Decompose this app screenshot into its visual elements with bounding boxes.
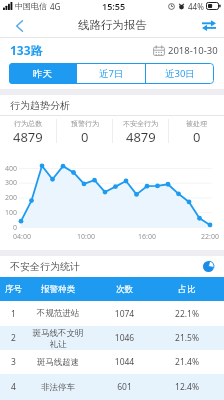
button[interactable]: 近30日 <box>146 63 214 84</box>
button[interactable]: Back <box>0 14 38 38</box>
staticText: 21.4% <box>160 356 214 368</box>
staticText: 次数 <box>89 284 160 295</box>
staticText: 非法停车 <box>27 382 89 393</box>
staticText: 线路行为报告 <box>78 18 147 32</box>
button[interactable]: Pie chart <box>203 261 214 272</box>
staticText: 昨天 <box>33 68 52 80</box>
staticText: 200 <box>0 193 17 203</box>
staticText: 1046 <box>89 332 160 344</box>
button[interactable]: Switch line <box>194 14 224 38</box>
staticText: 斑马线超速 <box>27 357 89 368</box>
staticText: 15:55 <box>102 0 126 12</box>
staticText: 1074 <box>89 308 160 320</box>
staticText: 0 <box>193 128 201 146</box>
staticText: 300 <box>0 178 17 188</box>
staticText: 近30日 <box>165 67 195 80</box>
staticText: 4 <box>0 381 27 393</box>
staticText: 100 <box>0 208 17 218</box>
staticText: 不安全行为统计 <box>10 260 80 273</box>
staticText: 序号 <box>0 284 27 295</box>
staticText: 44% <box>188 1 204 12</box>
staticText: 占比 <box>160 284 214 295</box>
staticText: 2 <box>0 332 27 344</box>
staticText: 4879 <box>126 128 156 146</box>
staticText: 22.1% <box>160 308 214 320</box>
staticText: 行为总数 <box>14 119 42 128</box>
staticText: 1 <box>0 308 27 320</box>
staticText: 不规范进站 <box>27 308 89 319</box>
staticText: 近7日 <box>99 67 124 80</box>
staticText: 斑马线不文明 礼让 <box>27 328 89 349</box>
staticText: 22:00 <box>197 232 223 242</box>
staticText: 不安全行为 <box>123 119 158 128</box>
staticText: 04:00 <box>9 232 35 242</box>
staticText: 4G <box>50 1 61 12</box>
staticText: 4879 <box>13 128 43 146</box>
staticText: 0 <box>0 223 17 233</box>
button[interactable]: 3 <box>0 350 224 374</box>
staticText: 报警种类 <box>27 284 89 295</box>
staticText: 400 <box>0 164 17 174</box>
staticText: 12.4% <box>160 381 214 393</box>
staticText: 133路 <box>10 42 43 58</box>
staticText: 601 <box>89 381 160 393</box>
staticText: 预警行为 <box>71 119 99 128</box>
staticText: 2018-10-30 <box>168 44 218 57</box>
staticText: 10:00 <box>73 232 99 242</box>
staticText: 21.5% <box>160 332 214 344</box>
button[interactable]: 昨天 <box>9 63 76 84</box>
button[interactable]: 2 <box>0 326 224 350</box>
button[interactable]: 1 <box>0 301 224 326</box>
staticText: 1044 <box>89 356 160 368</box>
button[interactable]: 2018-10-30 <box>153 44 218 57</box>
button[interactable]: 4 <box>0 374 224 400</box>
staticText: 行为趋势分析 <box>10 99 70 112</box>
staticText: 中国电信 <box>15 1 47 11</box>
staticText: 0 <box>81 128 89 146</box>
staticText: 16:00 <box>134 232 160 242</box>
staticText: 3 <box>0 356 27 368</box>
staticText: 被处理 <box>186 119 207 128</box>
button[interactable]: 近7日 <box>77 63 145 84</box>
